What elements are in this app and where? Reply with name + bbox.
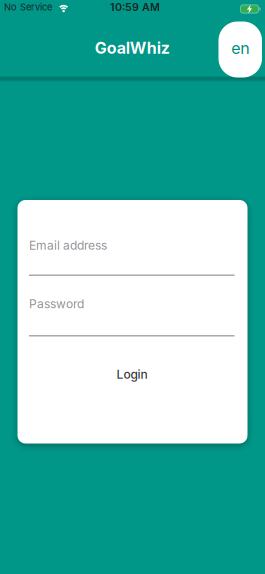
staticText: 10:59 AM (110, 1, 160, 13)
staticText: Password (29, 297, 84, 311)
staticText: Email address (29, 238, 107, 253)
staticText: GoalWhiz (95, 39, 170, 57)
button[interactable]: Email address (29, 236, 235, 278)
button[interactable]: Password (29, 296, 235, 338)
staticText: No Service (4, 1, 52, 12)
button[interactable]: Language: English (218, 21, 262, 77)
staticText: Login (116, 367, 147, 381)
button[interactable]: Login (104, 360, 159, 388)
staticText: en (231, 39, 249, 58)
